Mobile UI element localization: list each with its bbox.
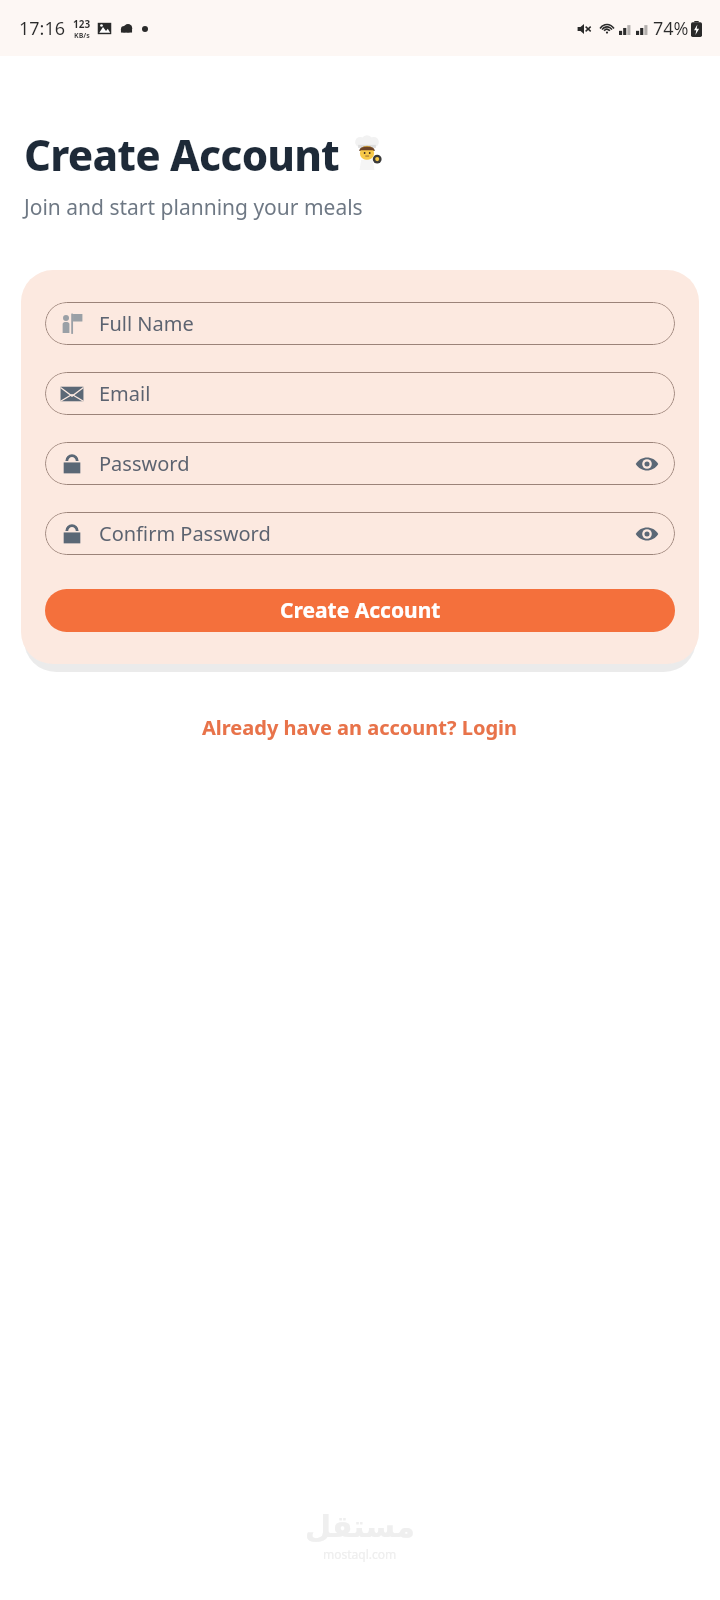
button[interactable]: Confirm Password xyxy=(45,512,675,555)
button[interactable]: Email xyxy=(45,372,675,415)
button[interactable]: Show password xyxy=(633,450,661,478)
staticText: 17:16 xyxy=(19,16,66,41)
staticText: Full Name xyxy=(99,310,194,337)
button[interactable]: Show password xyxy=(633,520,661,548)
staticText: Join and start planning your meals xyxy=(24,193,363,222)
staticText: 74% xyxy=(653,16,689,41)
staticText: Confirm Password xyxy=(99,520,271,547)
staticText: Already have an account? Login xyxy=(202,714,518,741)
staticText: Email xyxy=(99,380,151,407)
staticText: 123 xyxy=(73,17,91,31)
button[interactable]: Password xyxy=(45,442,675,485)
button[interactable]: Already have an account? Login xyxy=(0,706,720,749)
staticText: Password xyxy=(99,450,190,477)
staticText: KB/s xyxy=(74,31,90,41)
staticText: mostaql.com xyxy=(323,1546,397,1562)
button[interactable]: Create Account xyxy=(45,589,675,632)
staticText: مستقل xyxy=(305,1509,415,1544)
button[interactable]: Full Name xyxy=(45,302,675,345)
staticText: Create Account xyxy=(280,596,441,625)
staticText: Create Account xyxy=(24,126,340,183)
